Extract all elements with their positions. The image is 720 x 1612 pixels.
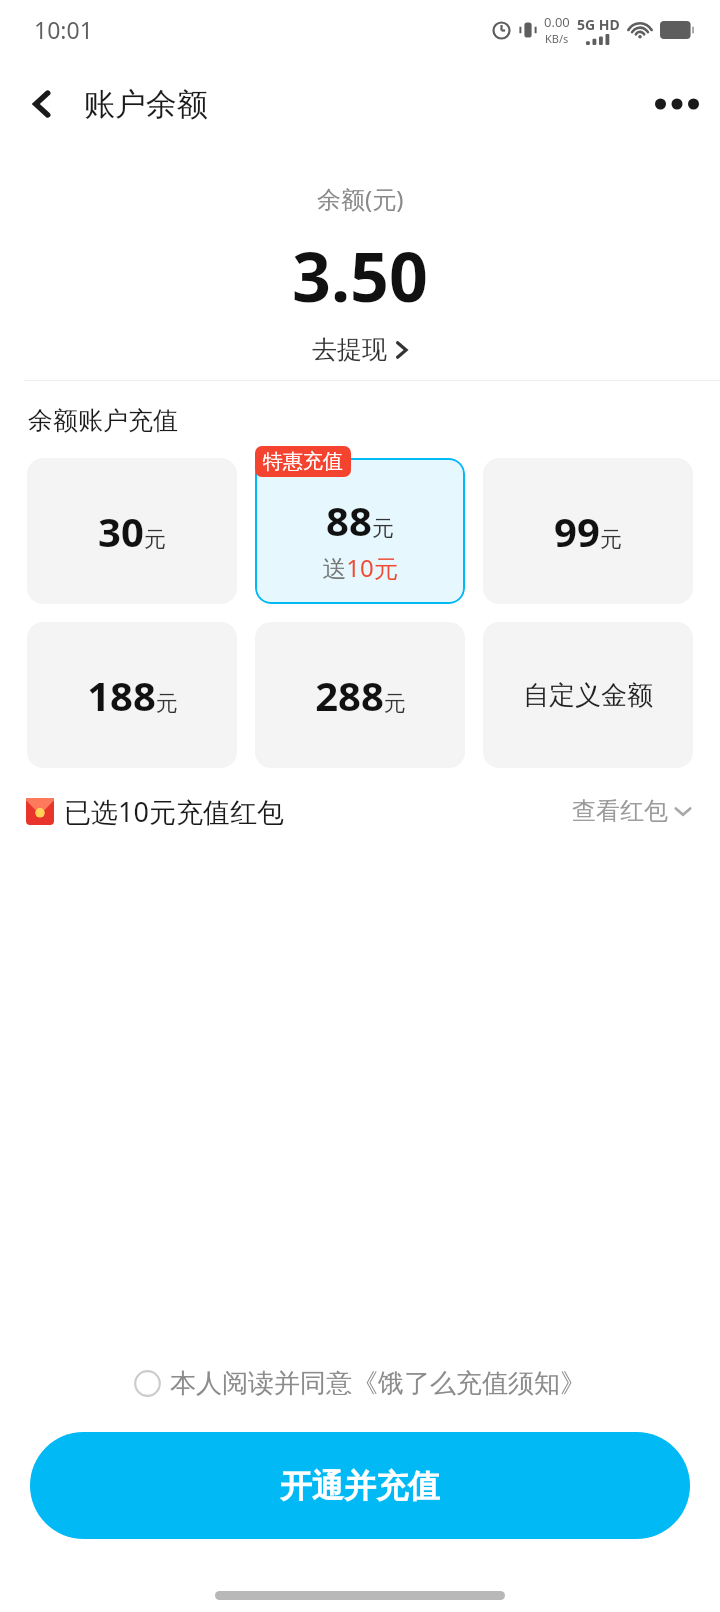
staticText: 送10元 bbox=[322, 551, 398, 584]
staticText: 查看红包 bbox=[572, 796, 668, 826]
staticText: 自定义金额 bbox=[523, 679, 653, 712]
staticText: 已选10元充值红包 bbox=[64, 793, 284, 830]
staticText: 88元 bbox=[326, 493, 394, 547]
staticText: 余额账户充值 bbox=[28, 405, 178, 436]
staticText: 3.50 bbox=[292, 229, 428, 322]
button[interactable]: 288元 bbox=[255, 622, 465, 768]
button[interactable]: 30元 bbox=[27, 458, 237, 604]
staticText: 188元 bbox=[87, 668, 178, 722]
staticText: 99元 bbox=[554, 504, 622, 558]
staticText: 本人阅读并同意《饿了么充值须知》 bbox=[170, 1367, 586, 1400]
button[interactable]: 查看红包 bbox=[568, 792, 696, 830]
staticText: 288元 bbox=[315, 668, 406, 722]
staticText: 0.00 bbox=[544, 13, 570, 31]
button[interactable]: 去提现 bbox=[304, 330, 416, 369]
button[interactable]: 188元 bbox=[27, 622, 237, 768]
staticText: 去提现 bbox=[312, 334, 387, 365]
staticText: KB/s bbox=[545, 31, 569, 46]
staticText: 10:01 bbox=[34, 14, 93, 45]
staticText: 特惠充值 bbox=[263, 449, 343, 474]
button[interactable]: Back bbox=[14, 76, 70, 132]
button[interactable]: 自定义金额 bbox=[483, 622, 693, 768]
button[interactable]: 88元 bbox=[255, 458, 465, 604]
staticText: 账户余额 bbox=[84, 85, 208, 124]
staticText: 余额(元) bbox=[317, 182, 404, 215]
button[interactable]: 开通并充值 bbox=[30, 1432, 690, 1539]
button[interactable]: 99元 bbox=[483, 458, 693, 604]
staticText: 30元 bbox=[98, 504, 166, 558]
staticText: 开通并充值 bbox=[280, 1466, 440, 1506]
button[interactable]: 本人阅读并同意《饿了么充值须知》 bbox=[130, 1361, 590, 1406]
staticText: 5G HD bbox=[577, 15, 620, 34]
button[interactable]: More options bbox=[648, 75, 706, 133]
